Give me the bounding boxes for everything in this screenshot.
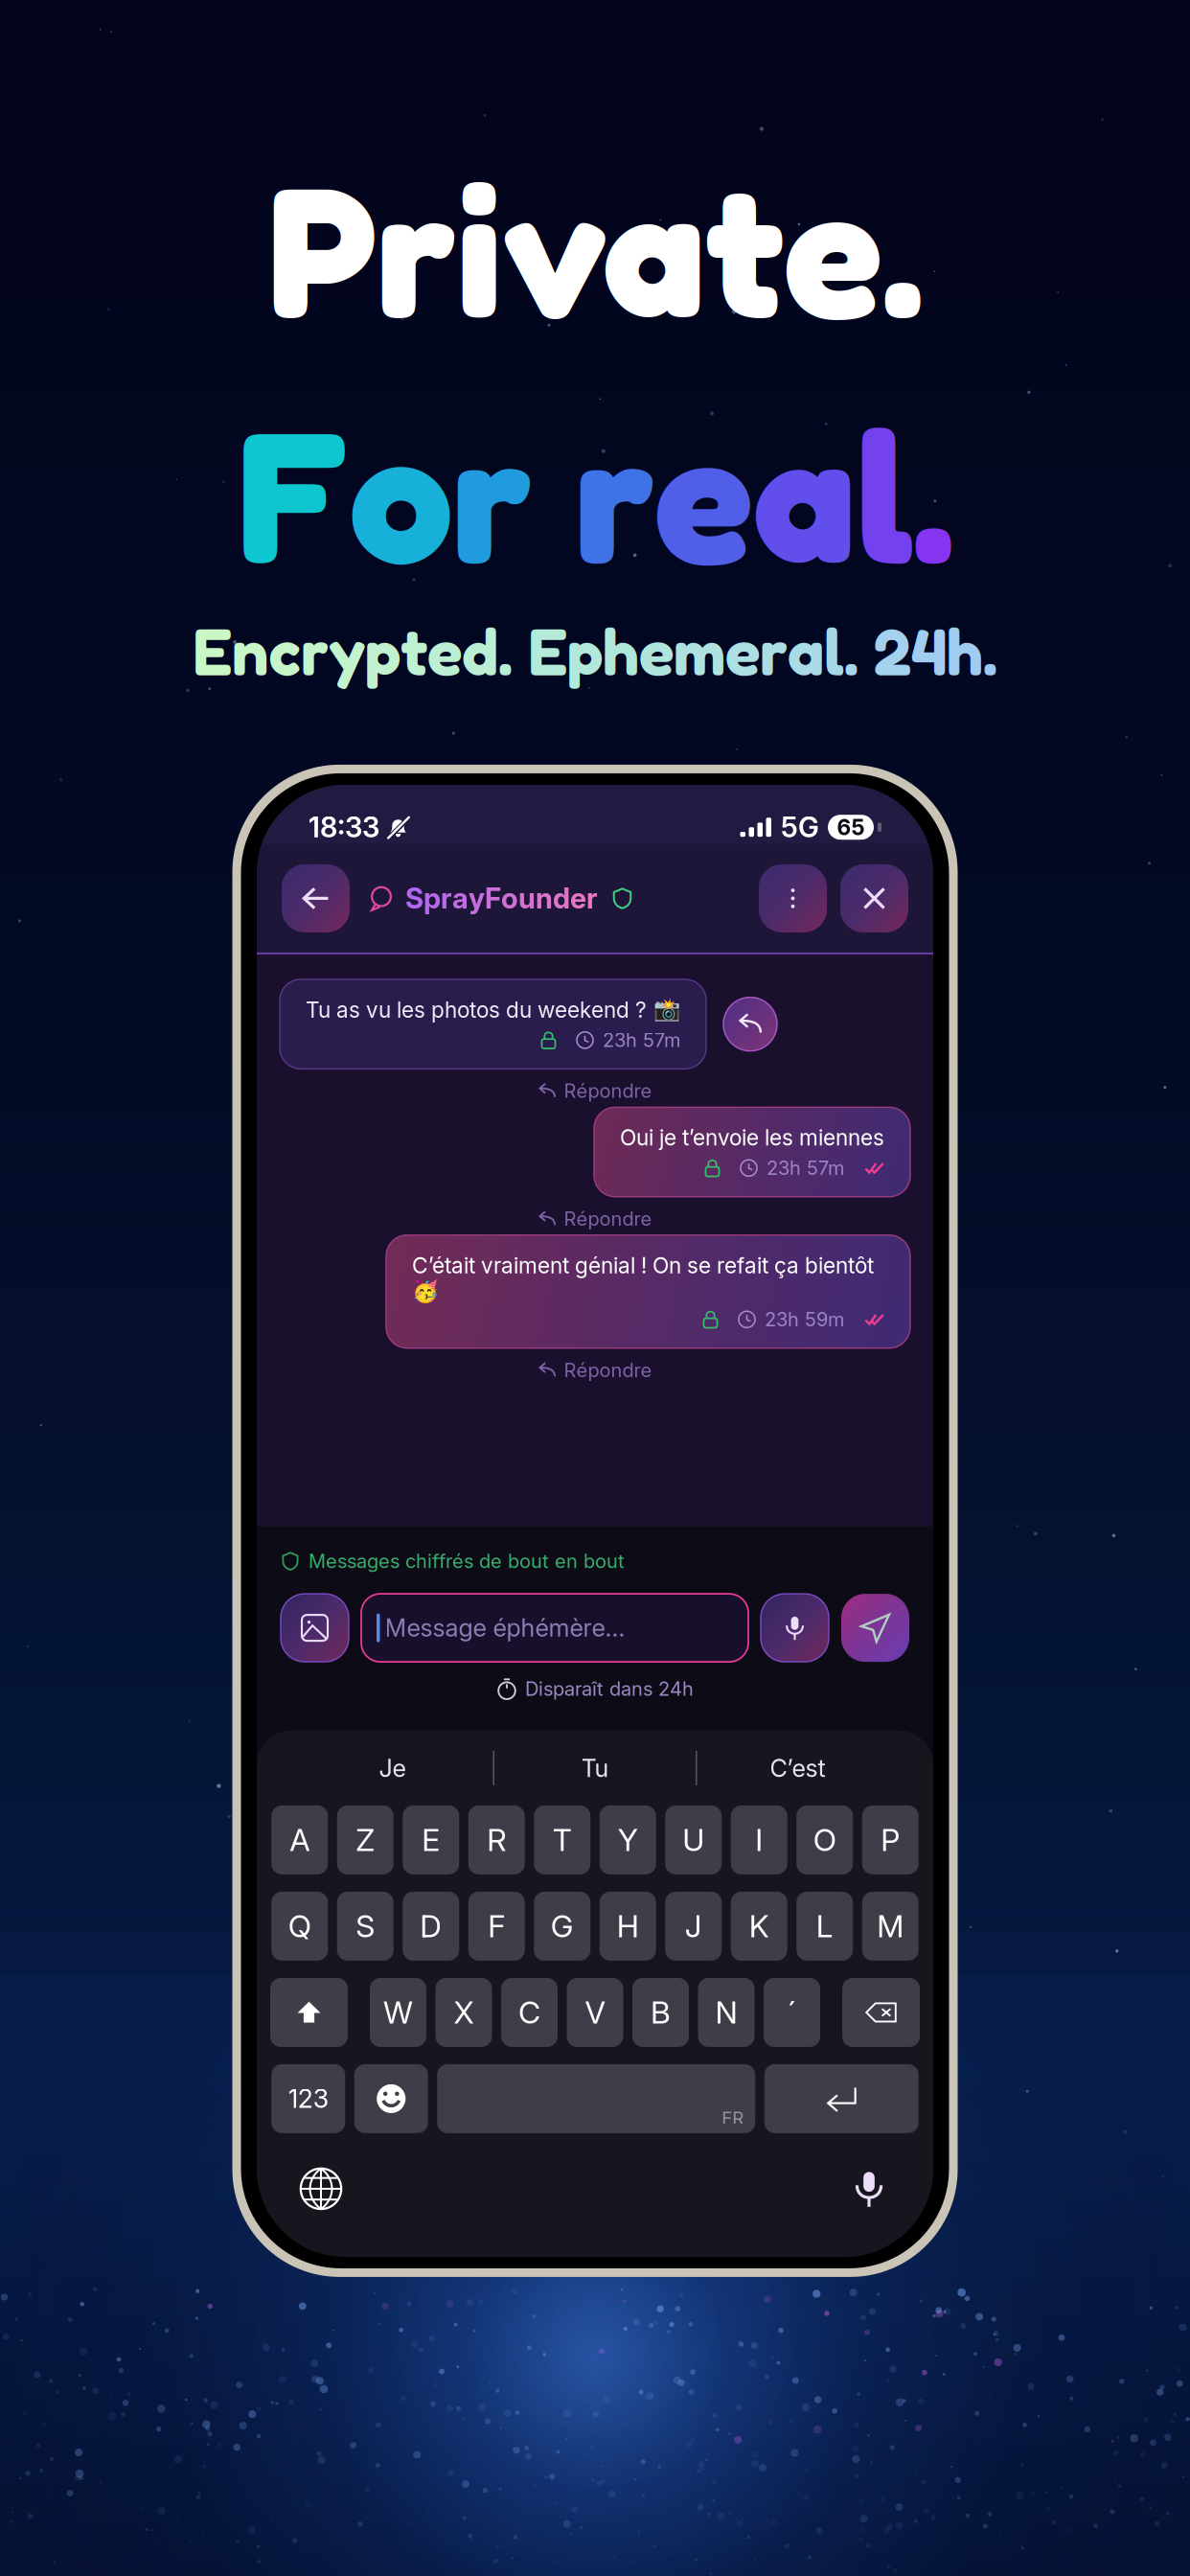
staticText: N	[715, 1994, 737, 2031]
staticText: p	[423, 881, 441, 915]
button[interactable]: Switch keyboard	[291, 2159, 351, 2218]
button[interactable]: ´	[764, 1978, 820, 2047]
staticText: r	[760, 611, 788, 690]
staticText: c	[268, 611, 301, 690]
staticText: Tu as vu les photos du weekend ?	[306, 997, 647, 1023]
button[interactable]: U	[665, 1805, 722, 1874]
button[interactable]: L	[796, 1892, 853, 1961]
staticText: Oui je t’envoie les miennes	[620, 1124, 884, 1151]
button[interactable]: W	[370, 1978, 426, 2047]
staticText: C’est	[770, 1753, 826, 1783]
button[interactable]: More options	[759, 864, 827, 932]
button[interactable]: Record voice message	[761, 1594, 829, 1662]
button[interactable]: H	[600, 1892, 656, 1961]
staticText: K	[749, 1908, 769, 1945]
button[interactable]: T	[534, 1805, 590, 1874]
staticText: Répondre	[564, 1207, 652, 1230]
staticText: a	[788, 611, 824, 690]
staticText: 18:33	[309, 810, 379, 844]
button[interactable]: Close	[840, 864, 908, 932]
button[interactable]: A	[271, 1805, 328, 1874]
staticText: e	[639, 611, 674, 690]
button[interactable]: M	[862, 1892, 919, 1961]
button[interactable]: J	[665, 1892, 722, 1961]
staticText: C	[518, 1994, 540, 2031]
staticText: .	[983, 611, 997, 690]
staticText: R	[487, 1821, 506, 1858]
button[interactable]: R	[468, 1805, 525, 1874]
button[interactable]: K	[731, 1892, 787, 1961]
staticText: S	[356, 1908, 375, 1945]
staticText: a	[753, 383, 856, 605]
staticText: Tu	[581, 1753, 609, 1783]
button[interactable]: B	[632, 1978, 689, 2047]
button[interactable]: Quick reply	[723, 997, 777, 1051]
button[interactable]: E	[403, 1805, 459, 1874]
button[interactable]: Return	[764, 2064, 919, 2133]
button[interactable]: Y	[600, 1805, 656, 1874]
button[interactable]: Back	[282, 864, 350, 932]
staticText: m	[674, 611, 725, 690]
staticText: Répondre	[564, 1359, 652, 1382]
button[interactable]: O	[796, 1805, 853, 1874]
button[interactable]: Send	[841, 1594, 909, 1662]
staticText: E	[528, 611, 567, 690]
button[interactable]: Emoji	[354, 2064, 428, 2133]
staticText: B	[651, 1994, 671, 2031]
staticText: 23h 59m	[765, 1308, 844, 1331]
staticText: X	[454, 1994, 474, 2031]
staticText: I	[755, 1821, 763, 1858]
button[interactable]: C	[501, 1978, 558, 2047]
staticText: V	[585, 1994, 605, 2031]
staticText: 📸	[653, 997, 680, 1023]
button[interactable]: 123	[271, 2064, 345, 2133]
staticText: r	[301, 611, 329, 690]
staticText: Y	[618, 1821, 638, 1858]
button[interactable]: Z	[337, 1805, 394, 1874]
button[interactable]: Q	[271, 1892, 328, 1961]
staticText: U	[682, 1821, 704, 1858]
staticText: C’était vraiment génial ! On se refait ç…	[412, 1252, 874, 1304]
button[interactable]: N	[698, 1978, 755, 2047]
button[interactable]: Space	[437, 2064, 755, 2133]
staticText: d	[553, 881, 570, 915]
staticText: 5G	[781, 810, 819, 844]
button[interactable]: I	[731, 1805, 787, 1874]
button[interactable]: Add photo	[281, 1594, 349, 1662]
button[interactable]: Shift	[270, 1978, 348, 2047]
staticText: p	[365, 611, 400, 690]
staticText: e	[654, 383, 753, 605]
staticText: Messages chiffrés de bout en bout	[309, 1550, 625, 1573]
staticText: 123	[288, 2083, 328, 2114]
button[interactable]: S	[337, 1892, 394, 1961]
button[interactable]: Dictate	[839, 2159, 899, 2218]
button[interactable]: G	[534, 1892, 590, 1961]
staticText: Message éphémère...	[385, 1613, 625, 1643]
staticText: Private.	[267, 137, 923, 360]
staticText: O	[813, 1821, 836, 1858]
staticText: .	[913, 383, 953, 605]
staticText: p	[567, 611, 603, 690]
staticText: Répondre	[564, 1079, 652, 1102]
staticText: Je	[379, 1753, 406, 1783]
staticText: t	[400, 611, 427, 690]
staticText: G	[551, 1908, 574, 1945]
staticText: F	[488, 1908, 505, 1945]
staticText: T	[553, 1821, 572, 1858]
staticText: l	[824, 611, 844, 690]
staticText: h	[947, 611, 983, 690]
button[interactable]: Delete	[842, 1978, 920, 2047]
staticText: FR	[722, 2107, 744, 2128]
button[interactable]: F	[468, 1892, 525, 1961]
button[interactable]: D	[403, 1892, 459, 1961]
staticText: l	[856, 383, 913, 605]
staticText: ´	[788, 1994, 796, 2031]
staticText: Z	[356, 1821, 375, 1858]
staticText: r	[452, 383, 532, 605]
button[interactable]: V	[567, 1978, 623, 2047]
button[interactable]: X	[435, 1978, 492, 2047]
button[interactable]: P	[862, 1805, 919, 1874]
